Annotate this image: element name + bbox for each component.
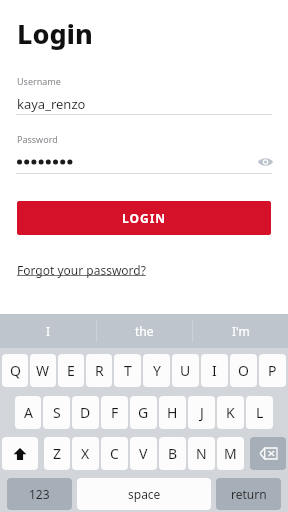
button[interactable]: Backspace [250, 437, 286, 470]
button[interactable]: Show password [254, 151, 276, 173]
button[interactable]: J [188, 396, 215, 429]
button[interactable]: M [217, 437, 244, 470]
staticText: J [200, 403, 204, 422]
staticText: T [124, 361, 132, 380]
button[interactable]: R [86, 354, 112, 387]
staticText: space [128, 486, 161, 502]
staticText: I [212, 361, 217, 380]
staticText: K [226, 403, 235, 422]
button[interactable]: kaya_renzo [0, 93, 288, 114]
staticText: N [196, 444, 207, 463]
button[interactable]: the [97, 314, 192, 348]
button[interactable]: P [259, 354, 286, 387]
button[interactable]: I [0, 314, 96, 348]
button[interactable]: X [72, 437, 99, 470]
button[interactable]: D [72, 396, 99, 429]
button[interactable]: V [130, 437, 157, 470]
button[interactable]: A [15, 396, 41, 429]
staticText: C [110, 444, 119, 463]
button[interactable]: N [188, 437, 215, 470]
staticText: G [138, 403, 149, 422]
staticText: S [53, 403, 61, 422]
staticText: D [80, 403, 91, 422]
button[interactable]: Forgot your password? [17, 262, 146, 278]
staticText: X [81, 444, 90, 463]
button[interactable]: B [159, 437, 186, 470]
staticText: E [67, 361, 75, 380]
staticText: Login [17, 15, 93, 52]
button[interactable]: G [130, 396, 157, 429]
staticText: U [180, 361, 191, 380]
button[interactable]: Q [2, 354, 28, 387]
button[interactable]: LOGIN [17, 201, 271, 235]
staticText: P [268, 361, 277, 380]
button[interactable]: E [58, 354, 84, 387]
button[interactable]: return [216, 478, 281, 510]
staticText: Password [17, 133, 58, 145]
staticText: B [168, 444, 178, 463]
staticText: kaya_renzo [17, 95, 86, 113]
staticText: LOGIN [122, 210, 167, 226]
button[interactable]: L [246, 396, 273, 429]
staticText: O [238, 361, 249, 380]
button[interactable]: K [217, 396, 244, 429]
button[interactable]: O [230, 354, 257, 387]
button[interactable]: T [114, 354, 141, 387]
staticText: 123 [29, 486, 50, 502]
staticText: H [167, 403, 178, 422]
button[interactable]: C [101, 437, 128, 470]
staticText: Z [53, 444, 62, 463]
button[interactable]: Z [44, 437, 70, 470]
staticText: Y [153, 361, 161, 380]
button[interactable] [0, 150, 288, 173]
staticText: I [46, 323, 51, 339]
button[interactable]: U [172, 354, 199, 387]
staticText: Q [10, 361, 21, 380]
button[interactable]: I [201, 354, 228, 387]
staticText: V [139, 444, 148, 463]
button[interactable]: S [43, 396, 70, 429]
button[interactable]: W [30, 354, 56, 387]
staticText: Username [17, 75, 61, 87]
button[interactable]: Shift [2, 437, 38, 470]
button[interactable]: Y [143, 354, 170, 387]
staticText: I'm [232, 323, 250, 339]
button[interactable]: F [101, 396, 128, 429]
staticText: M [224, 444, 237, 463]
staticText: Forgot your password? [17, 262, 146, 278]
button[interactable]: I'm [193, 314, 288, 348]
staticText: return [231, 486, 267, 502]
staticText: R [95, 361, 104, 380]
staticText: W [36, 361, 50, 380]
staticText: A [24, 403, 33, 422]
button[interactable]: H [159, 396, 186, 429]
staticText: L [256, 403, 264, 422]
button[interactable]: space [77, 478, 211, 510]
staticText: F [111, 403, 119, 422]
button[interactable]: 123 [7, 478, 72, 510]
staticText: the [135, 323, 154, 339]
